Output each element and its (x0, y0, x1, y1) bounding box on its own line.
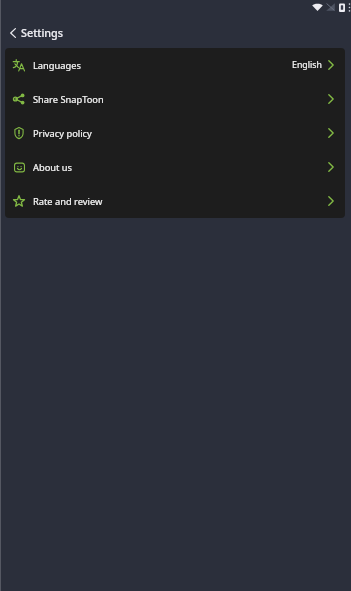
staticText: Share SnapToon (33, 93, 104, 106)
staticText: Settings (21, 25, 64, 40)
button[interactable]: Languages (5, 48, 345, 82)
staticText: Rate and review (33, 195, 103, 208)
staticText: English (292, 59, 322, 71)
button[interactable]: Back (4, 24, 22, 42)
staticText: Privacy policy (33, 127, 92, 140)
button[interactable]: About us (5, 150, 345, 184)
button[interactable]: Privacy policy (5, 116, 345, 150)
button[interactable]: Share SnapToon (5, 82, 345, 116)
staticText: About us (33, 161, 73, 174)
button[interactable]: Rate and review (5, 184, 345, 218)
staticText: Languages (33, 59, 81, 72)
